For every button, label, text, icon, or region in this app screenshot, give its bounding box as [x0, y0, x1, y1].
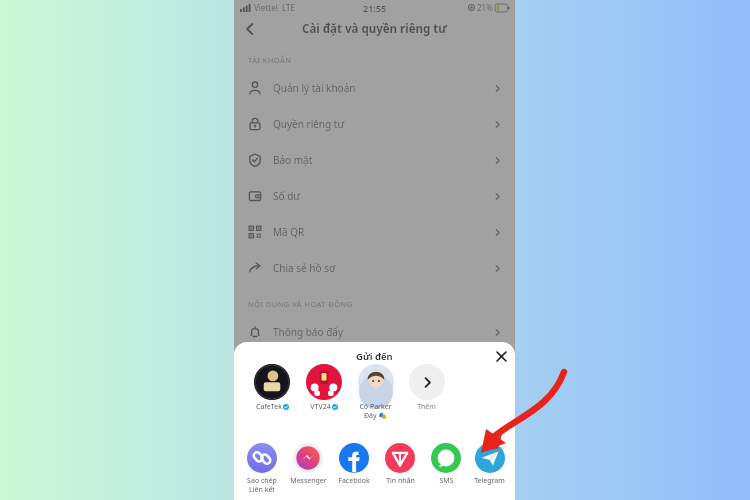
staticText: Messenger [290, 476, 327, 486]
staticText: Gửi đến [356, 350, 393, 363]
staticText: Có Parker Đây 🎭 [359, 402, 392, 420]
button[interactable]: Sao chép Liên kết [239, 443, 285, 494]
button[interactable]: Tin nhắn [377, 443, 423, 486]
staticText: Thông báo đẩy [273, 325, 344, 339]
staticText: 21% [477, 2, 493, 13]
button[interactable]: Back [237, 16, 263, 42]
button[interactable]: Facebook [331, 443, 377, 486]
button[interactable]: Chia sẻ hồ sơ [234, 250, 515, 286]
staticText: VTV24 [310, 402, 331, 412]
button[interactable]: VTV24 [302, 364, 346, 412]
staticText: Chia sẻ hồ sơ [273, 261, 336, 275]
staticText: Telegram [474, 476, 505, 486]
button[interactable]: Quản lý tài khoản [234, 70, 515, 106]
staticText: NỘI DUNG VÀ HOẠT ĐỘNG [248, 299, 353, 309]
button[interactable]: Mã QR [234, 214, 515, 250]
staticText: Bảo mật [273, 153, 313, 167]
staticText: Mã QR [273, 225, 305, 239]
button[interactable]: Thông báo đẩy [234, 314, 515, 350]
button[interactable]: Close [491, 346, 511, 366]
staticText: Thêm [417, 402, 436, 412]
button[interactable]: Quyền riêng tư [234, 106, 515, 142]
staticText: LTE [282, 2, 295, 13]
staticText: Quyền riêng tư [273, 117, 345, 131]
button[interactable]: Messenger [285, 443, 331, 486]
button[interactable]: Telegram [469, 443, 510, 486]
button[interactable]: SMS [423, 443, 469, 486]
button[interactable]: CafeTek [250, 364, 294, 412]
button[interactable]: Bảo mật [234, 142, 515, 178]
staticText: Viettel [254, 2, 278, 13]
staticText: TÀI KHOẢN [248, 55, 292, 65]
staticText: SMS [439, 476, 454, 486]
staticText: CafeTek [256, 402, 282, 412]
staticText: 21:55 [363, 2, 387, 14]
staticText: Tin nhắn [386, 476, 415, 486]
staticText: Sao chép Liên kết [247, 476, 277, 494]
button[interactable]: Số dư [234, 178, 515, 214]
button[interactable]: Có Parker Đây 🎭 [354, 364, 397, 420]
button[interactable]: Thêm [405, 364, 448, 412]
staticText: Facebook [338, 476, 370, 486]
staticText: Cài đặt và quyền riêng tư [302, 21, 447, 37]
staticText: Quản lý tài khoản [273, 81, 356, 95]
staticText: Số dư [273, 189, 301, 203]
